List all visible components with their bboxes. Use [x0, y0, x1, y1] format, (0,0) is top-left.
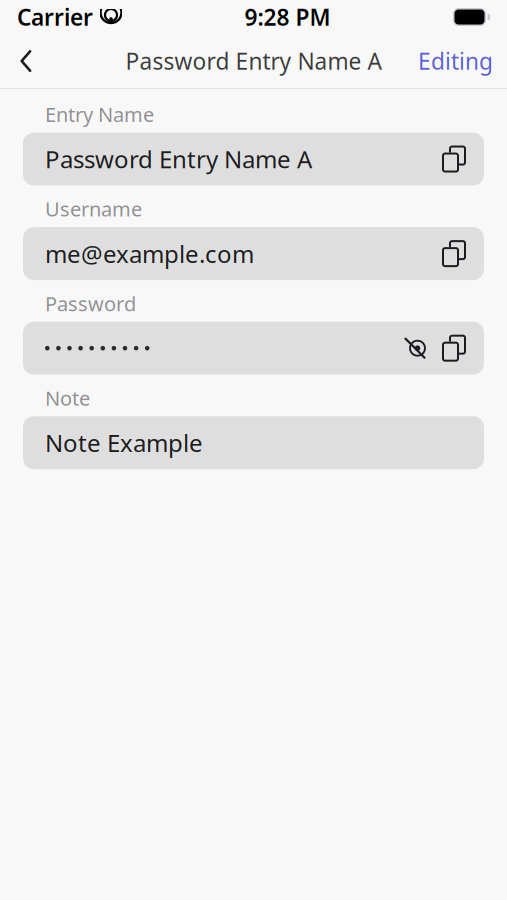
button[interactable]: Editing [404, 34, 507, 88]
staticText: Password Entry Name A [45, 143, 312, 175]
staticText: Password [45, 290, 136, 317]
staticText: Note Example [45, 427, 203, 459]
button[interactable]: Copy password [434, 322, 474, 375]
staticText: Password Entry Name A [125, 46, 381, 76]
button[interactable]: Show password [396, 322, 434, 375]
staticText: Editing [418, 46, 493, 76]
staticText: Carrier [17, 2, 93, 32]
staticText: 9:28 PM [244, 2, 330, 32]
staticText: Username [45, 196, 142, 222]
button[interactable]: Copy entry name [434, 133, 474, 186]
button[interactable]: Back [0, 34, 52, 88]
staticText: Note [45, 385, 90, 411]
button[interactable]: Copy username [434, 227, 474, 280]
staticText: me@example.com [45, 238, 254, 270]
staticText: Entry Name [45, 101, 154, 128]
